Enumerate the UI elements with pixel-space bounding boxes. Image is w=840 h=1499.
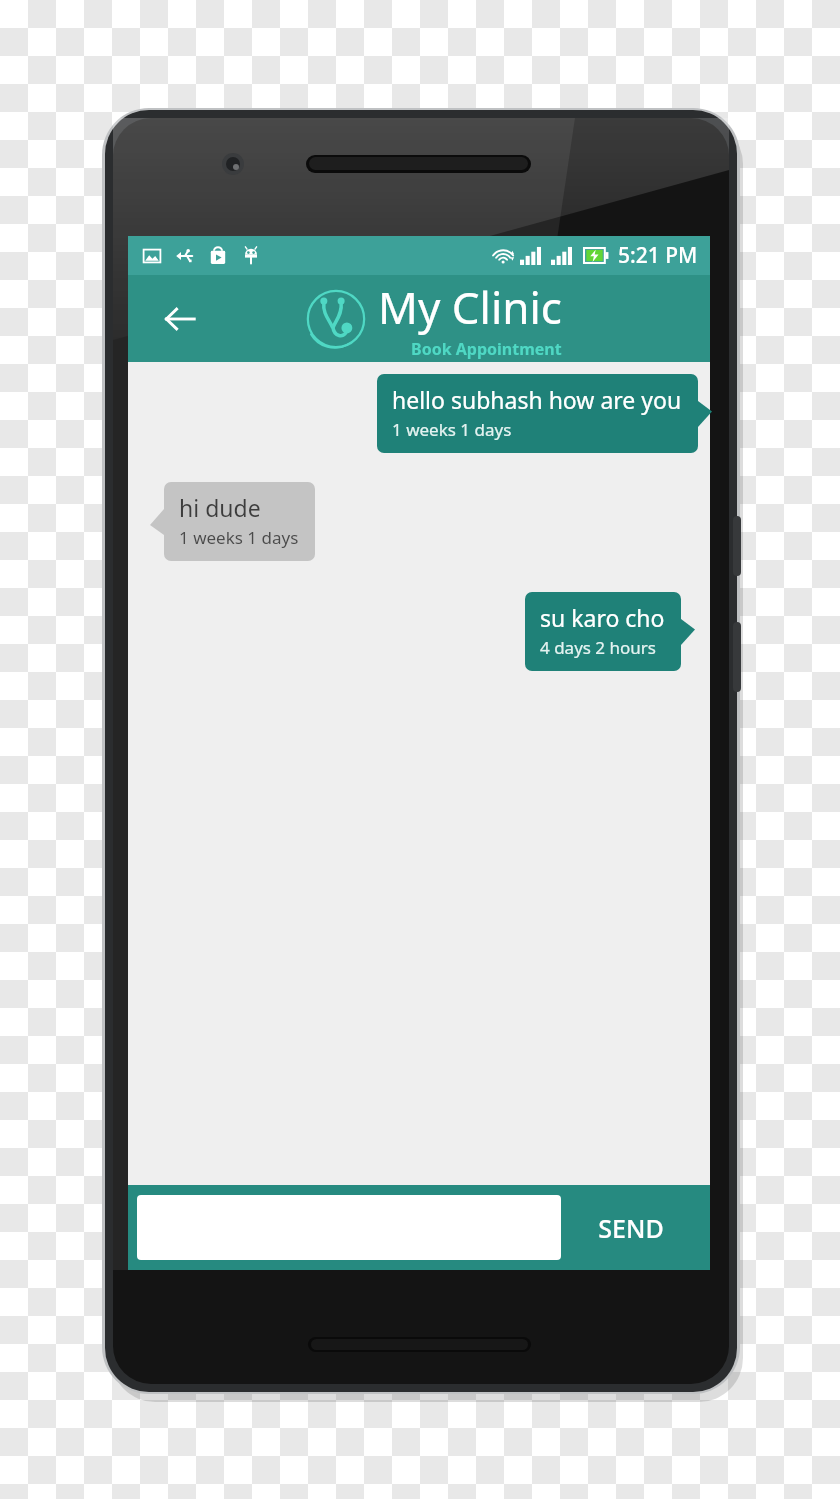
button[interactable]: Message input <box>137 1195 561 1260</box>
button[interactable]: hi dude <box>150 482 315 561</box>
staticText: My Clinic <box>378 277 562 337</box>
button[interactable]: SEND <box>561 1195 701 1260</box>
button[interactable]: hello subhash how are you <box>377 374 712 453</box>
staticText: su karo cho <box>540 602 665 633</box>
staticText: 4 days 2 hours <box>540 636 656 659</box>
staticText: hi dude <box>179 492 261 523</box>
button[interactable]: su karo cho <box>525 592 695 671</box>
staticText: 5:21 PM <box>618 241 698 270</box>
button[interactable]: Back <box>154 293 206 345</box>
staticText: Book Appointment <box>411 338 562 360</box>
staticText: SEND <box>598 1211 664 1245</box>
staticText: 1 weeks 1 days <box>392 418 512 441</box>
staticText: 1 weeks 1 days <box>179 526 299 549</box>
staticText: hello subhash how are you <box>392 384 682 415</box>
